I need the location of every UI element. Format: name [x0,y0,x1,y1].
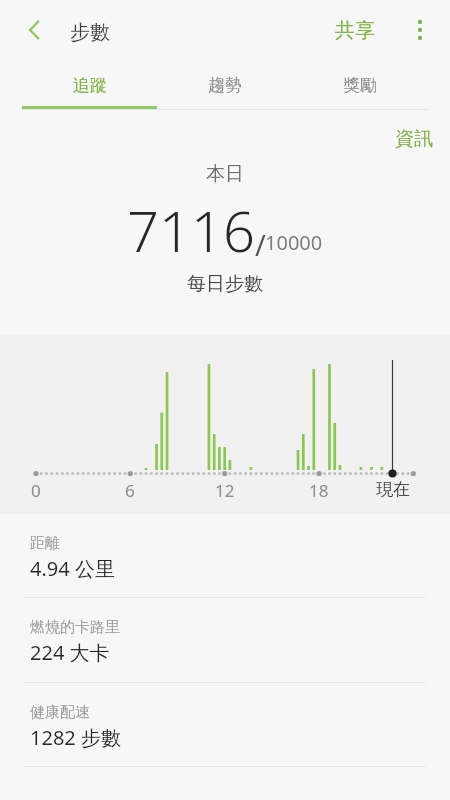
button[interactable]: 趨勢 [150,60,300,109]
staticText: 獎勵 [343,75,377,96]
staticText: 追蹤 [73,75,107,96]
staticText: 7116 [127,192,255,268]
staticText: 健康配速 [30,703,90,722]
staticText: 本日 [206,162,244,186]
staticText: 步數 [70,20,110,45]
staticText: 距離 [30,534,60,553]
staticText: 資訊 [395,127,433,151]
button[interactable]: 健康配速 [0,683,450,767]
staticText: / [255,225,266,264]
staticText: 每日步數 [187,272,263,296]
staticText: 10000 [265,229,323,256]
staticText: 6 [125,479,135,501]
button[interactable]: 獎勵 [285,60,435,109]
staticText: 18 [309,479,329,501]
staticText: 共享 [335,18,375,43]
button[interactable]: 追蹤 [15,60,165,109]
staticText: 趨勢 [208,75,242,96]
staticText: 4.94 公里 [30,555,115,582]
button[interactable]: Back [6,2,62,58]
button[interactable]: 距離 [0,514,450,598]
staticText: 0 [31,479,41,501]
staticText: 現在 [376,479,410,500]
staticText: 224 大卡 [30,639,110,666]
staticText: 12 [215,479,235,501]
button[interactable]: 資訊 [383,122,445,156]
button[interactable]: More options [396,6,444,54]
staticText: 燃燒的卡路里 [30,618,120,637]
staticText: 1282 步數 [30,724,121,751]
button[interactable]: 燃燒的卡路里 [0,598,450,683]
button[interactable]: 共享 [325,2,385,58]
